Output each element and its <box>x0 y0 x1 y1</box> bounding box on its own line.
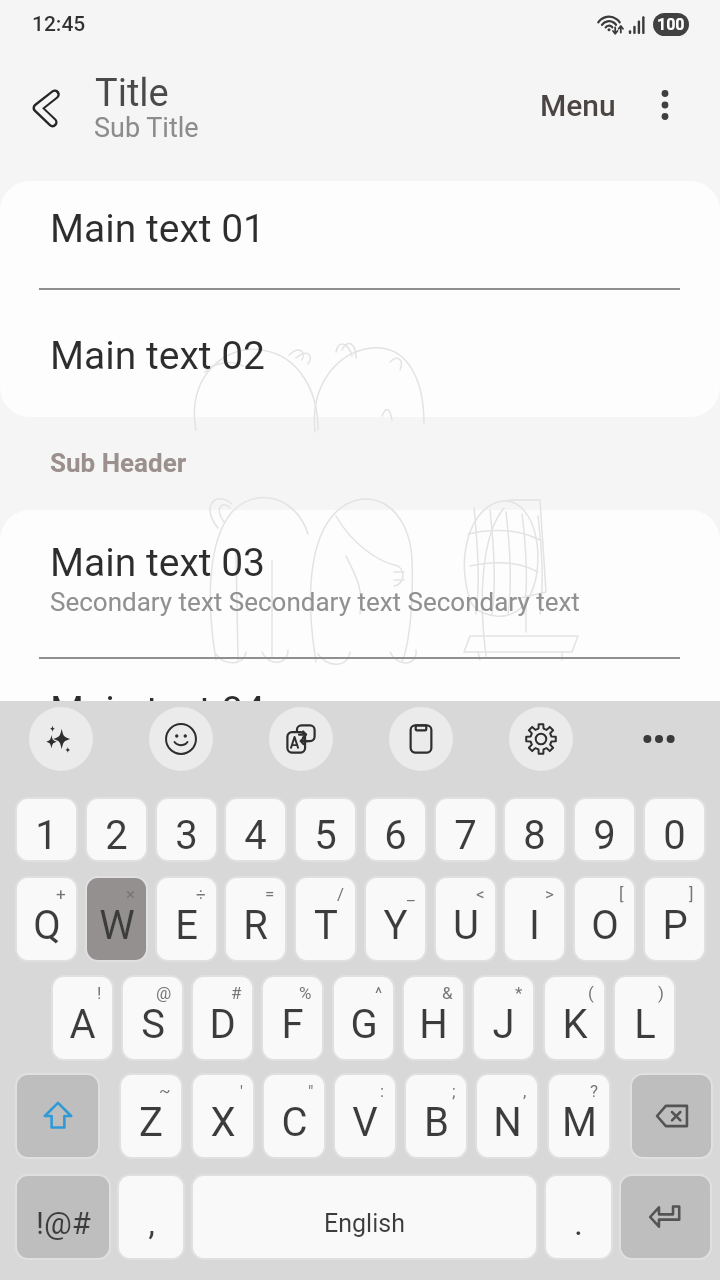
staticText: . <box>574 1203 583 1243</box>
staticText: ) <box>658 983 664 1003</box>
button[interactable]: ; <box>406 1075 466 1157</box>
button[interactable]: × <box>87 878 146 960</box>
staticText: L <box>634 1001 656 1048</box>
staticText: @ <box>156 983 172 1003</box>
staticText: : <box>380 1081 385 1101</box>
button[interactable]: ^ <box>334 977 393 1059</box>
button[interactable]: , <box>477 1075 537 1157</box>
staticText: ' <box>240 1081 243 1101</box>
button[interactable]: _ <box>366 878 425 960</box>
button[interactable]: 9 <box>575 799 634 860</box>
staticText: + <box>56 884 66 904</box>
button[interactable]: Main text 02 <box>0 290 720 435</box>
button[interactable]: ) <box>615 977 674 1059</box>
staticText: F <box>281 1001 304 1048</box>
button[interactable]: Menu <box>528 80 628 130</box>
button[interactable]: % <box>263 977 322 1059</box>
staticText: Main text 01 <box>50 206 266 252</box>
button[interactable]: ÷ <box>157 878 216 960</box>
button[interactable]: 1 <box>17 799 76 860</box>
staticText: E <box>175 902 198 949</box>
staticText: ? <box>590 1081 599 1101</box>
button[interactable]: ! <box>53 977 112 1059</box>
button[interactable]: : <box>335 1075 395 1157</box>
button[interactable]: , <box>119 1176 183 1258</box>
button[interactable]: 6 <box>366 799 425 860</box>
button[interactable]: translate <box>269 707 333 771</box>
staticText: !@# <box>36 1205 91 1241</box>
button[interactable]: 0 <box>645 799 704 860</box>
staticText: W <box>99 902 135 949</box>
button[interactable]: [ <box>575 878 634 960</box>
button[interactable]: 2 <box>87 799 146 860</box>
staticText: ; <box>452 1081 456 1101</box>
button[interactable]: 5 <box>296 799 355 860</box>
button[interactable]: 4 <box>226 799 285 860</box>
button[interactable]: 3 <box>157 799 216 860</box>
button[interactable]: + <box>17 878 76 960</box>
button[interactable]: & <box>404 977 463 1059</box>
button[interactable]: smiley <box>149 707 213 771</box>
button[interactable]: < <box>436 878 495 960</box>
button[interactable]: # <box>193 977 252 1059</box>
button[interactable]: ] <box>645 878 704 960</box>
staticText: ÷ <box>196 884 206 904</box>
button[interactable]: " <box>264 1075 324 1157</box>
button[interactable]: clipboard <box>389 707 453 771</box>
button[interactable]: Navigate up <box>17 80 73 136</box>
staticText: % <box>299 983 312 1003</box>
staticText: 12:45 <box>32 12 86 37</box>
button[interactable]: English <box>193 1176 536 1258</box>
button[interactable]: > <box>505 878 564 960</box>
staticText: I <box>529 902 540 949</box>
staticText: P <box>662 902 688 949</box>
staticText: 0 <box>663 812 686 859</box>
staticText: C <box>281 1099 308 1146</box>
staticText: S <box>141 1001 165 1048</box>
button[interactable]: ~ <box>121 1075 181 1157</box>
button[interactable]: @ <box>123 977 182 1059</box>
staticText: B <box>424 1099 449 1146</box>
staticText: O <box>591 902 619 949</box>
staticText: " <box>308 1081 314 1101</box>
staticText: 100 <box>657 15 685 34</box>
staticText: # <box>231 983 242 1003</box>
button[interactable]: ' <box>193 1075 253 1157</box>
staticText: Main text 04 <box>50 688 266 734</box>
staticText: Secondary text Secondary text Secondary … <box>50 587 580 617</box>
staticText: 6 <box>384 812 407 859</box>
staticText: , <box>148 1203 155 1243</box>
button[interactable]: back <box>632 1075 711 1157</box>
button[interactable]: More options <box>639 79 691 131</box>
staticText: G <box>350 1001 378 1048</box>
button[interactable]: 7 <box>436 799 495 860</box>
button[interactable]: sparkle <box>29 707 93 771</box>
staticText: 2 <box>105 812 128 859</box>
staticText: X <box>210 1099 236 1146</box>
button[interactable]: ? <box>549 1075 609 1157</box>
button[interactable]: enter <box>621 1176 710 1258</box>
staticText: Sub Header <box>50 448 187 478</box>
staticText: Y <box>383 902 408 949</box>
button[interactable]: More keyboard options <box>627 707 691 771</box>
button[interactable]: !@# <box>17 1176 109 1258</box>
button[interactable]: 8 <box>505 799 564 860</box>
staticText: × <box>126 884 136 904</box>
button[interactable]: ( <box>545 977 604 1059</box>
staticText: V <box>352 1099 378 1146</box>
button[interactable]: . <box>546 1176 611 1258</box>
button[interactable]: Main text 03 <box>0 510 720 659</box>
button[interactable]: settings <box>509 707 573 771</box>
staticText: Z <box>139 1099 163 1146</box>
button[interactable]: Main text 04 <box>0 645 720 790</box>
staticText: & <box>442 983 453 1003</box>
staticText: Q <box>33 902 61 949</box>
button[interactable]: shift <box>17 1075 98 1157</box>
button[interactable]: * <box>474 977 533 1059</box>
button[interactable]: = <box>226 878 285 960</box>
staticText: N <box>493 1099 522 1146</box>
staticText: K <box>562 1001 588 1048</box>
staticText: ^ <box>375 983 383 1003</box>
button[interactable]: / <box>296 878 355 960</box>
button[interactable]: Main text 01 <box>0 181 720 290</box>
